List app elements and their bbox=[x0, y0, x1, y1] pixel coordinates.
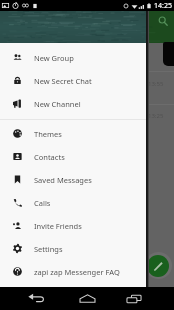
staticText: zapi zap Messenger FAQ bbox=[34, 267, 120, 277]
staticText: Invite Friends bbox=[34, 221, 82, 231]
button[interactable]: Home bbox=[75, 287, 99, 310]
button[interactable]: New Group bbox=[0, 46, 146, 69]
button[interactable]: Calls bbox=[0, 191, 146, 214]
button[interactable]: Back bbox=[24, 287, 48, 310]
staticText: 14:25 bbox=[154, 1, 172, 11]
staticText: Calls bbox=[34, 198, 51, 208]
staticText: New Group bbox=[34, 53, 74, 63]
button[interactable]: New message bbox=[147, 255, 169, 277]
staticText: Settings bbox=[34, 244, 63, 254]
button[interactable]: Saved Messages bbox=[0, 168, 146, 191]
button[interactable]: Recent apps bbox=[122, 287, 146, 310]
button[interactable]: New Secret Chat bbox=[0, 69, 146, 92]
staticText: 13:55 bbox=[148, 80, 164, 88]
button[interactable]: New Channel bbox=[0, 92, 146, 115]
staticText: Saved Messages bbox=[34, 175, 92, 185]
staticText: 13:25 bbox=[148, 112, 164, 120]
button[interactable]: zapi zap Messenger FAQ bbox=[0, 260, 146, 283]
staticText: New Secret Chat bbox=[34, 76, 92, 86]
button[interactable]: Invite Friends bbox=[0, 214, 146, 237]
button[interactable]: Search bbox=[155, 13, 170, 28]
staticText: Contacts bbox=[34, 152, 65, 162]
button[interactable]: Themes bbox=[0, 122, 146, 145]
staticText: Themes bbox=[34, 129, 62, 139]
staticText: New Channel bbox=[34, 99, 81, 109]
button[interactable]: Settings bbox=[0, 237, 146, 260]
button[interactable]: Contacts bbox=[0, 145, 146, 168]
